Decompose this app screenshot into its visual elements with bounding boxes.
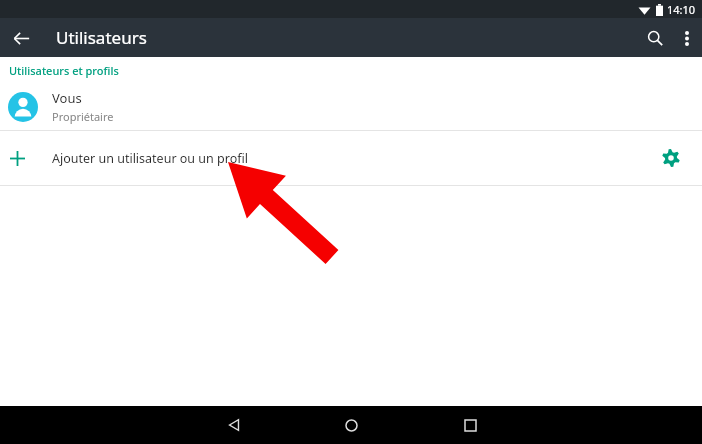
staticText: Utilisateurs et profils xyxy=(9,63,119,78)
staticText: 14:10 xyxy=(667,2,696,17)
button[interactable]: More options xyxy=(672,23,702,53)
staticText: Utilisateurs xyxy=(56,26,147,49)
button[interactable]: Back xyxy=(219,410,249,440)
staticText: Propriétaire xyxy=(52,109,114,124)
button[interactable]: Vous xyxy=(0,83,702,130)
staticText: Vous xyxy=(52,89,82,107)
button[interactable]: Ajouter un utilisateur ou un profil xyxy=(0,131,702,185)
button[interactable]: Recent apps xyxy=(455,410,485,440)
button[interactable]: Home xyxy=(336,410,366,440)
button[interactable]: Search xyxy=(638,21,672,55)
button[interactable]: Back xyxy=(6,23,36,53)
button[interactable]: Settings xyxy=(656,143,686,173)
staticText: Ajouter un utilisateur ou un profil xyxy=(52,150,248,167)
